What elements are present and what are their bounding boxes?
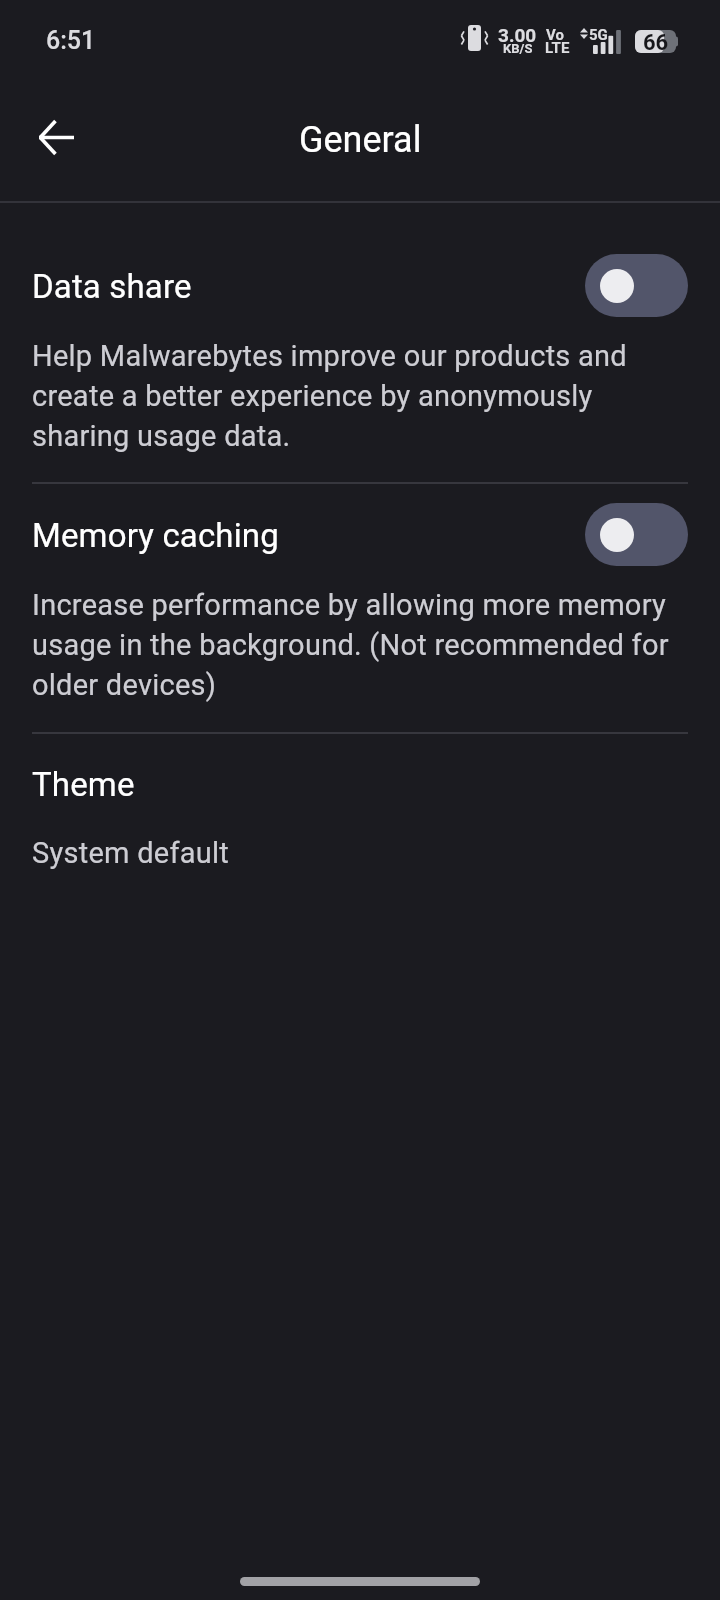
button[interactable]: Memory caching [0,484,720,731]
staticText: Help Malwarebytes improve our products a… [32,339,627,453]
staticText: 6:51 [46,26,96,55]
staticText: System default [32,836,230,870]
button[interactable]: Toggle off [585,254,688,317]
staticText: KB/S [503,41,533,56]
staticText: Increase performance by allowing more me… [32,588,669,702]
staticText: Memory caching [32,516,279,555]
button[interactable]: Theme [0,734,720,900]
staticText: 66 [643,30,669,53]
staticText: Vo [546,26,564,44]
staticText: 3.00 [498,24,537,46]
button[interactable]: Data share [0,212,720,481]
staticText: Data share [32,267,192,306]
button[interactable]: Toggle off [585,503,688,566]
staticText: Theme [32,765,135,804]
staticText: 5G [589,26,608,44]
staticText: General [299,119,422,161]
button[interactable]: Back [24,105,88,169]
staticText: LTE [545,39,570,57]
